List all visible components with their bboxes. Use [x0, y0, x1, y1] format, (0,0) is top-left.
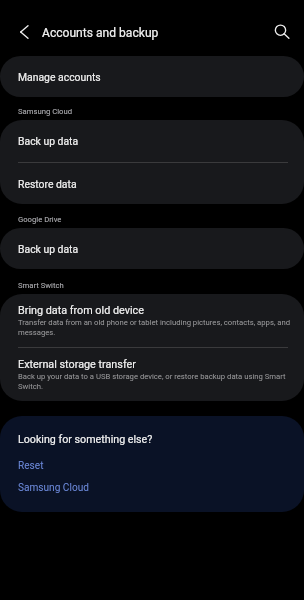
- button[interactable]: Back up data: [0, 120, 304, 162]
- staticText: Restore data: [18, 178, 77, 190]
- staticText: Manage accounts: [18, 71, 101, 83]
- button[interactable]: Navigate up: [2, 10, 46, 54]
- staticText: External storage transfer: [18, 358, 136, 371]
- staticText: Accounts and backup: [42, 26, 159, 40]
- staticText: Back up data: [18, 135, 79, 147]
- staticText: Bring data from old device: [18, 304, 144, 317]
- staticText: Google Drive: [18, 215, 62, 224]
- button[interactable]: Restore data: [0, 163, 304, 204]
- button[interactable]: Manage accounts: [0, 56, 304, 97]
- staticText: Samsung Cloud: [18, 482, 89, 494]
- staticText: Samsung Cloud: [18, 107, 72, 116]
- button[interactable]: Samsung Cloud: [0, 479, 304, 497]
- staticText: Back up your data to a USB storage devic…: [18, 372, 297, 391]
- button[interactable]: External storage transfer: [0, 348, 304, 401]
- staticText: Back up data: [18, 243, 79, 255]
- staticText: Transfer data from an old phone or table…: [18, 318, 297, 337]
- staticText: Reset: [18, 460, 44, 472]
- button[interactable]: Reset: [0, 457, 304, 475]
- button[interactable]: Back up data: [0, 228, 304, 269]
- button[interactable]: Bring data from old device: [0, 294, 304, 347]
- staticText: Looking for something else?: [18, 433, 153, 446]
- staticText: Smart Switch: [18, 281, 64, 290]
- button[interactable]: Search: [258, 10, 302, 54]
